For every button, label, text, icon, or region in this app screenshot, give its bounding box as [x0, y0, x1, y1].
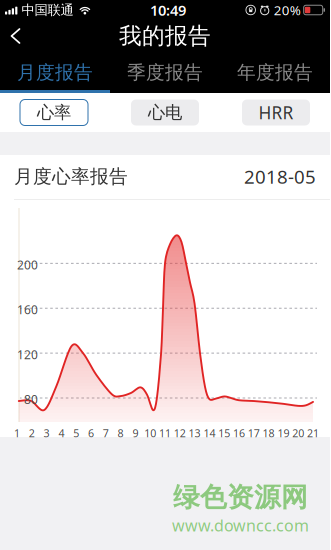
staticText: 绿色资源网	[173, 481, 308, 514]
staticText: 中国联通	[17, 2, 73, 18]
staticText: 2	[29, 426, 35, 440]
staticText: 我的报告	[119, 22, 211, 50]
button[interactable]: 心电	[131, 99, 199, 125]
staticText: 80	[24, 391, 38, 407]
staticText: HRR	[258, 101, 293, 124]
staticText: 17	[248, 426, 260, 440]
staticText: 2018-05	[244, 164, 316, 189]
staticText: 19	[277, 426, 289, 440]
staticText: 月度心率报告	[14, 165, 128, 188]
staticText: 10:49	[150, 0, 186, 20]
button[interactable]: Back	[0, 20, 33, 52]
staticText: 18	[263, 426, 275, 440]
button[interactable]: 月度报告	[0, 52, 110, 93]
staticText: 9	[132, 426, 138, 440]
staticText: 200	[17, 257, 38, 273]
staticText: 5	[73, 426, 79, 440]
staticText: 160	[17, 302, 38, 318]
staticText: 10	[144, 426, 156, 440]
button[interactable]: 年度报告	[220, 52, 330, 93]
staticText: 3	[44, 426, 50, 440]
staticText: 8	[118, 426, 124, 440]
staticText: 120	[17, 347, 38, 362]
staticText: 季度报告	[127, 61, 203, 84]
staticText: 月度报告	[17, 61, 93, 84]
staticText: 16	[233, 426, 245, 440]
staticText: 11	[159, 426, 171, 440]
button[interactable]: HRR	[242, 99, 310, 125]
staticText: 心率	[37, 102, 71, 123]
staticText: 12	[174, 426, 186, 440]
staticText: 21	[307, 426, 319, 440]
staticText: 6	[88, 426, 94, 440]
staticText: 14	[203, 426, 215, 440]
staticText: 4	[58, 426, 64, 440]
staticText: 7	[103, 426, 109, 440]
staticText: 13	[189, 426, 201, 440]
staticText: 20%	[274, 1, 301, 19]
button[interactable]: 心率	[20, 99, 88, 125]
staticText: 1	[14, 426, 20, 440]
button[interactable]: 季度报告	[110, 52, 220, 93]
staticText: 15	[218, 426, 230, 440]
staticText: www.downcc.com	[172, 515, 309, 536]
staticText: 年度报告	[237, 61, 313, 84]
staticText: 心电	[148, 102, 182, 123]
staticText: 20	[292, 426, 304, 440]
